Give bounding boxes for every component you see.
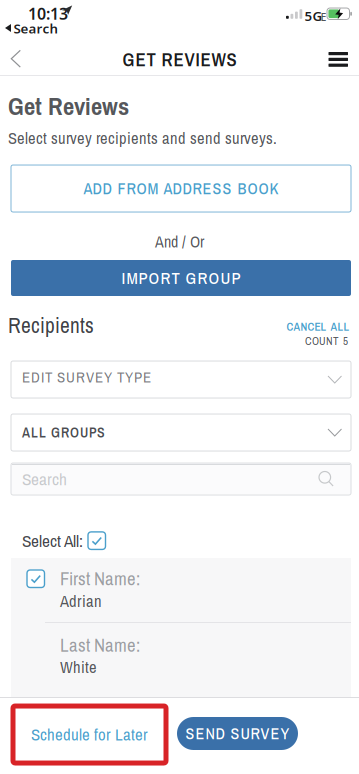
staticText: Search bbox=[13, 19, 58, 37]
staticText: 10:13 bbox=[28, 3, 68, 24]
button[interactable]: E D I T S U R V E Y T Y P E bbox=[11, 361, 351, 398]
staticText: Select survey recipients and send survey… bbox=[8, 127, 277, 149]
staticText: Get Reviews bbox=[8, 89, 129, 123]
staticText: Recipients bbox=[8, 311, 94, 340]
button[interactable]: Schedule for Later bbox=[13, 706, 166, 763]
button[interactable]: I M P O R T G R O U P bbox=[11, 260, 351, 296]
staticText: CANCEL ALL bbox=[286, 319, 349, 334]
staticText: G E T R E V I E W S bbox=[122, 47, 236, 72]
button[interactable]: Select recipient bbox=[27, 570, 44, 587]
staticText: E bbox=[320, 10, 326, 24]
staticText: And / Or bbox=[155, 231, 204, 253]
staticText: Adrian bbox=[60, 590, 102, 612]
staticText: Last Name: bbox=[60, 632, 140, 658]
staticText: S E N D S U R V E Y bbox=[185, 723, 289, 744]
button[interactable]: Menu bbox=[322, 46, 359, 73]
button[interactable]: A D D F R O M A D D R E S S B O O K bbox=[11, 165, 351, 212]
staticText: First Name: bbox=[60, 566, 140, 591]
button[interactable]: Search bbox=[11, 463, 351, 495]
staticText: White bbox=[60, 656, 97, 678]
staticText: Search bbox=[22, 467, 67, 491]
staticText: 5G bbox=[304, 7, 322, 25]
staticText: COUNT 5 bbox=[305, 333, 348, 348]
staticText: Select All: bbox=[22, 529, 83, 552]
button[interactable]: S E N D S U R V E Y bbox=[177, 717, 298, 750]
button[interactable]: CANCEL ALL bbox=[286, 319, 349, 334]
button[interactable]: Back bbox=[0, 43, 30, 74]
staticText: E D I T S U R V E Y T Y P E bbox=[22, 367, 151, 387]
staticText: Schedule for Later bbox=[31, 723, 148, 746]
button[interactable]: A L L G R O U P S bbox=[11, 414, 351, 451]
staticText: A D D F R O M A D D R E S S B O O K bbox=[83, 178, 278, 199]
staticText: I M P O R T G R O U P bbox=[121, 267, 240, 289]
staticText: A L L G R O U P S bbox=[22, 423, 105, 442]
button[interactable]: Select All bbox=[88, 532, 105, 549]
